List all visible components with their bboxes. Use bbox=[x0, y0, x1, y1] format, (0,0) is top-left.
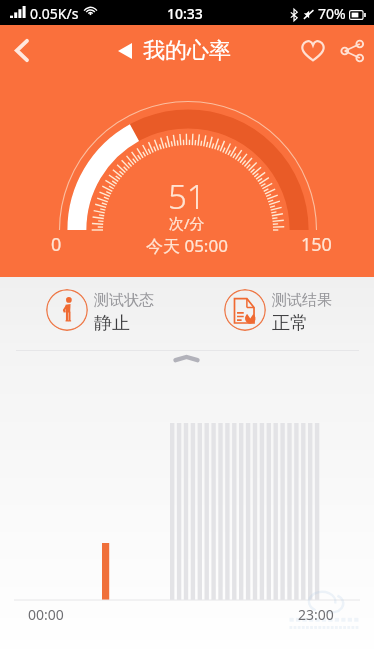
staticText: 0.05K/s bbox=[30, 4, 79, 23]
button[interactable]: 测试结果 bbox=[224, 288, 332, 332]
staticText: 10:33 bbox=[167, 4, 203, 23]
staticText: 次/分 bbox=[169, 213, 205, 233]
staticText: 150 bbox=[301, 232, 332, 257]
staticText: 70% bbox=[318, 4, 346, 23]
staticText: 今天 05:00 bbox=[146, 234, 228, 257]
staticText: 测试状态 bbox=[94, 291, 154, 310]
staticText: 51 bbox=[168, 174, 206, 219]
button[interactable]: Back bbox=[0, 29, 42, 71]
staticText: 静止 bbox=[94, 312, 130, 335]
button[interactable]: Share bbox=[332, 30, 373, 71]
staticText: 0 bbox=[51, 232, 62, 257]
button[interactable]: 测试状态 bbox=[46, 288, 154, 332]
button[interactable]: Favourite bbox=[292, 30, 333, 71]
staticText: 测试结果 bbox=[272, 291, 332, 310]
button[interactable]: 我的心率 bbox=[118, 36, 231, 66]
staticText: 00:00 bbox=[28, 605, 64, 624]
staticText: 正常 bbox=[272, 312, 308, 335]
staticText: 我的心率 bbox=[143, 37, 231, 65]
staticText: 23:00 bbox=[298, 605, 334, 624]
